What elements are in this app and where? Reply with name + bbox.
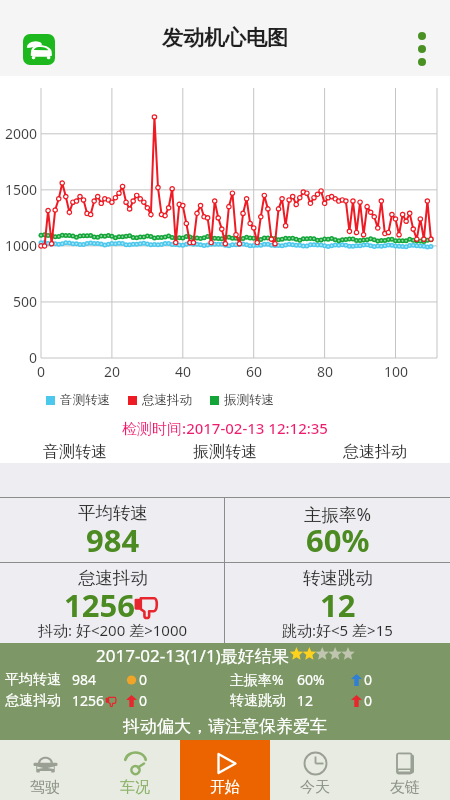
button[interactable]: 转速跳动 — [225, 563, 450, 643]
staticText: 0 — [139, 691, 148, 710]
staticText: 音测转速 — [60, 392, 110, 408]
staticText: 友链 — [390, 778, 420, 797]
staticText: 转速跳动 — [230, 692, 286, 710]
staticText: 1000 — [0, 236, 37, 255]
button[interactable]: 驾驶 — [0, 740, 90, 800]
staticText: 平均转速 — [78, 502, 148, 524]
button[interactable]: 音测转速 — [0, 440, 150, 464]
staticText: 平均转速 — [5, 671, 61, 689]
staticText: 0 — [364, 691, 373, 710]
staticText: 12 — [320, 584, 356, 626]
staticText: 怠速抖动 — [343, 442, 407, 462]
staticText: 100 — [376, 362, 416, 381]
button[interactable]: App icon — [23, 34, 55, 65]
staticText: 40 — [163, 362, 203, 381]
button[interactable]: 主振率% — [225, 498, 450, 562]
staticText: 80 — [305, 362, 345, 381]
button[interactable]: 车况 — [90, 740, 180, 800]
staticText: 转速跳动 — [303, 567, 373, 589]
staticText: 抖动偏大，请注意保养爱车 — [0, 716, 450, 737]
staticText: 60% — [306, 519, 370, 561]
button[interactable]: 开始 — [180, 740, 270, 800]
staticText: 怠速抖动 — [78, 567, 148, 589]
button[interactable]: 今天 — [270, 740, 360, 800]
staticText: 1256 — [64, 584, 135, 626]
staticText: 2017-02-13(1/1)最好结果 — [96, 644, 289, 665]
staticText: 跳动:好<5 差>15 — [282, 620, 393, 640]
staticText: 60 — [234, 362, 274, 381]
staticText: 车况 — [120, 778, 150, 797]
staticText: 驾驶 — [30, 778, 60, 797]
staticText: 0 — [364, 670, 373, 689]
button[interactable]: 振测转速 — [150, 440, 300, 464]
staticText: 怠速抖动 — [5, 692, 61, 710]
staticText: 1500 — [0, 180, 37, 199]
staticText: 检测时间:2017-02-13 12:12:35 — [0, 418, 450, 438]
staticText: 抖动: 好<200 差>1000 — [38, 620, 188, 640]
staticText: 主振率% — [304, 502, 372, 526]
button[interactable]: 友链 — [360, 740, 450, 800]
staticText: 984 — [86, 519, 140, 561]
button[interactable]: 怠速抖动 — [0, 563, 225, 643]
staticText: 2000 — [0, 124, 37, 143]
button[interactable]: More options — [406, 26, 438, 72]
staticText: 振测转速 — [193, 442, 257, 462]
staticText: 音测转速 — [43, 442, 107, 462]
staticText: 0 — [0, 348, 37, 367]
staticText: 0 — [139, 670, 148, 689]
staticText: 开始 — [210, 778, 240, 797]
staticText: 0 — [21, 362, 61, 381]
staticText: 今天 — [300, 778, 330, 797]
staticText: 60% — [297, 670, 325, 689]
staticText: 振测转速 — [224, 392, 274, 408]
staticText: 1256 — [72, 691, 105, 710]
staticText: 怠速抖动 — [142, 392, 192, 408]
staticText: 984 — [72, 670, 97, 689]
button[interactable]: 平均转速 — [0, 498, 225, 562]
staticText: 20 — [92, 362, 132, 381]
staticText: 主振率% — [230, 670, 284, 689]
staticText: 发动机心电图 — [162, 25, 288, 51]
button[interactable]: 怠速抖动 — [300, 440, 450, 464]
staticText: 12 — [297, 691, 314, 710]
staticText: 500 — [0, 292, 37, 311]
